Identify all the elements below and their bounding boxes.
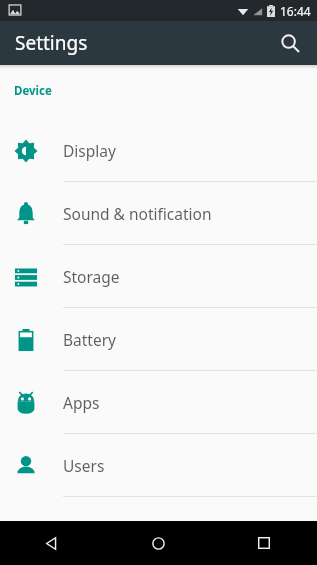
button[interactable]: Display [0,119,317,182]
button[interactable]: Sound & notification [0,182,317,245]
button[interactable]: Battery [0,308,317,371]
staticText: Display [63,140,116,161]
staticText: Sound & notification [63,203,212,224]
button[interactable]: Recent apps [211,521,317,565]
staticText: Settings [15,30,88,56]
staticText: Storage [63,266,120,287]
button[interactable]: Search [269,22,311,64]
staticText: Battery [63,329,117,350]
button[interactable]: Home [105,521,211,565]
button[interactable]: Back [0,521,105,565]
staticText: Device [14,83,52,99]
button[interactable]: Storage [0,245,317,308]
staticText: 16:44 [280,3,311,19]
staticText: Users [63,455,105,476]
button[interactable]: Apps [0,371,317,434]
staticText: Apps [63,392,100,413]
button[interactable]: Users [0,434,317,497]
